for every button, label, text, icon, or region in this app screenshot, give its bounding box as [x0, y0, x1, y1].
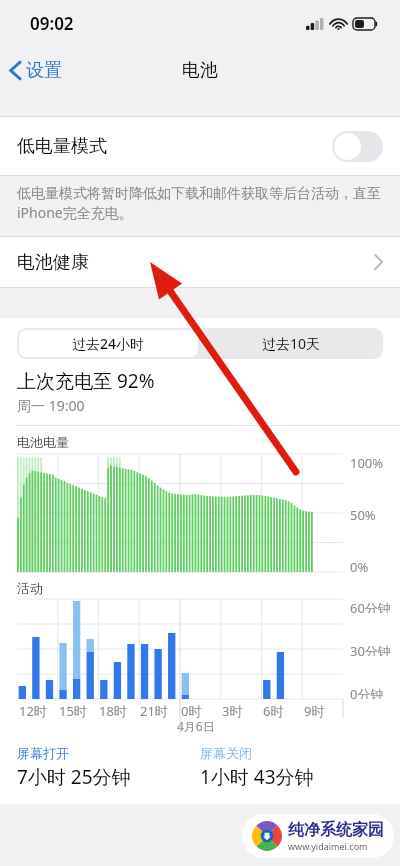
staticText: 上次充电至 92%: [17, 368, 155, 394]
staticText: 屏幕关闭: [200, 745, 252, 761]
staticText: 18时: [99, 702, 127, 720]
staticText: 低电量模式: [17, 135, 107, 158]
staticText: 4月6日: [177, 718, 215, 733]
staticText: 周一 19:00: [17, 396, 85, 415]
staticText: 6时: [263, 702, 284, 720]
staticText: 3时: [222, 702, 243, 720]
button[interactable]: 低电量模式: [0, 117, 400, 175]
staticText: 60分钟: [350, 599, 391, 613]
staticText: www.yidaimei.com: [288, 840, 368, 852]
staticText: 1小时 43分钟: [200, 764, 314, 790]
staticText: 过去24小时: [72, 334, 145, 353]
staticText: 屏幕打开: [17, 745, 69, 761]
staticText: 电池电量: [17, 434, 69, 450]
staticText: 100%: [350, 454, 384, 468]
staticText: 09:02: [30, 12, 74, 35]
staticText: 设置: [26, 59, 62, 82]
button[interactable]: 过去10天: [200, 328, 383, 359]
staticText: 0时: [181, 702, 202, 720]
staticText: 活动: [17, 580, 43, 596]
staticText: 电池健康: [17, 251, 89, 274]
staticText: 过去10天: [262, 334, 321, 353]
staticText: 电池: [182, 59, 218, 82]
staticText: 0分钟: [350, 685, 384, 699]
button[interactable]: 过去24小时: [19, 330, 198, 357]
staticText: 30分钟: [350, 642, 391, 656]
button[interactable]: 设置: [0, 55, 72, 86]
button[interactable]: 电池健康: [0, 237, 400, 287]
staticText: 50%: [350, 506, 376, 520]
staticText: 0%: [350, 558, 369, 572]
staticText: 纯净系统家园: [288, 820, 384, 840]
staticText: 9时: [304, 702, 325, 720]
staticText: 低电量模式将暂时降低如下载和邮件获取等后台活动，直至 iPhone完全充电。: [17, 185, 383, 222]
staticText: 15时: [59, 702, 87, 720]
staticText: 12时: [19, 702, 47, 720]
button[interactable]: 低电量模式开关: [332, 131, 383, 162]
staticText: 21时: [140, 702, 168, 720]
staticText: 7小时 25分钟: [17, 764, 131, 790]
